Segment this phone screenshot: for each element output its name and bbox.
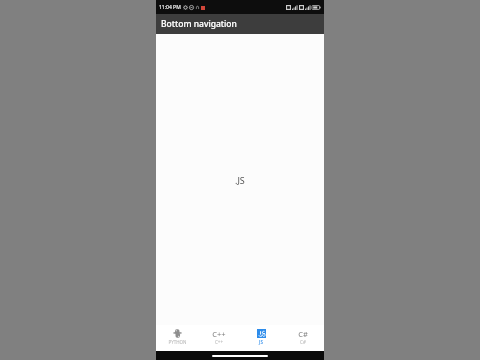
staticText: C++	[215, 339, 223, 345]
button[interactable]: JavaScript	[240, 325, 282, 351]
button[interactable]: C Sharp	[282, 325, 324, 351]
staticText: Bottom navigation	[161, 18, 237, 30]
button[interactable]: C++	[198, 325, 240, 351]
button[interactable]: Python	[156, 325, 198, 351]
staticText: 11:04 PM	[159, 4, 181, 11]
staticText: PYTHON	[168, 339, 187, 345]
staticText: C#	[298, 329, 308, 338]
staticText: C#	[300, 339, 306, 345]
staticText: C++	[212, 329, 226, 338]
staticText: JS	[259, 339, 263, 345]
staticText: .JS	[235, 174, 245, 186]
